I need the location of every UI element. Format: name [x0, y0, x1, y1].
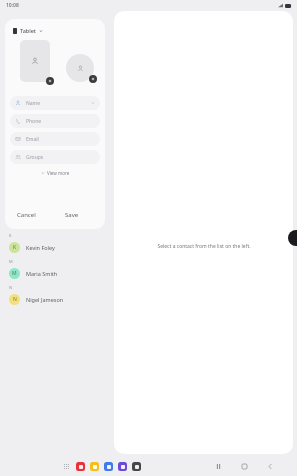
- button[interactable]: M: [0, 265, 111, 282]
- staticText: K: [9, 233, 12, 238]
- button[interactable]: App 3: [104, 462, 113, 471]
- button[interactable]: All apps: [63, 463, 70, 470]
- button[interactable]: Add avatar: [66, 54, 94, 82]
- button[interactable]: K: [0, 239, 111, 256]
- button[interactable]: Home: [239, 461, 249, 471]
- button[interactable]: App 5: [132, 462, 141, 471]
- button[interactable]: App 2: [90, 462, 99, 471]
- button[interactable]: Save: [63, 209, 81, 221]
- staticText: Tablet: [20, 27, 36, 34]
- staticText: Kevin Foley: [26, 244, 55, 251]
- button[interactable]: Add: [89, 75, 97, 83]
- staticText: N: [9, 285, 13, 290]
- button[interactable]: Groups: [10, 150, 100, 164]
- button[interactable]: Back: [265, 461, 275, 471]
- button[interactable]: Add: [46, 77, 54, 85]
- staticText: Cancel: [17, 211, 36, 219]
- staticText: Maria Smith: [26, 270, 58, 277]
- staticText: K: [13, 244, 17, 251]
- staticText: Name: [26, 100, 41, 107]
- staticText: 10:08: [6, 2, 19, 9]
- button[interactable]: Cancel: [15, 209, 38, 221]
- staticText: Groups: [26, 154, 44, 161]
- staticText: Save: [65, 211, 79, 219]
- staticText: N: [13, 296, 17, 303]
- button[interactable]: Handle: [288, 230, 297, 246]
- button[interactable]: Email: [10, 132, 100, 146]
- staticText: M: [9, 259, 13, 264]
- staticText: Nigel Jameson: [26, 296, 64, 303]
- staticText: Phone: [26, 118, 42, 125]
- button[interactable]: Phone: [10, 114, 100, 128]
- button[interactable]: App 4: [118, 462, 127, 471]
- button[interactable]: App 1: [76, 462, 85, 471]
- staticText: View more: [47, 170, 70, 176]
- button[interactable]: Recents: [213, 461, 223, 471]
- staticText: Select a contact from the list on the le…: [157, 243, 251, 250]
- button[interactable]: Name: [10, 96, 100, 110]
- button[interactable]: Tablet: [13, 27, 43, 34]
- button[interactable]: N: [0, 291, 111, 308]
- staticText: Email: [26, 136, 39, 143]
- button[interactable]: Add photo: [20, 40, 50, 82]
- staticText: M: [12, 270, 17, 277]
- button[interactable]: View more: [41, 170, 70, 176]
